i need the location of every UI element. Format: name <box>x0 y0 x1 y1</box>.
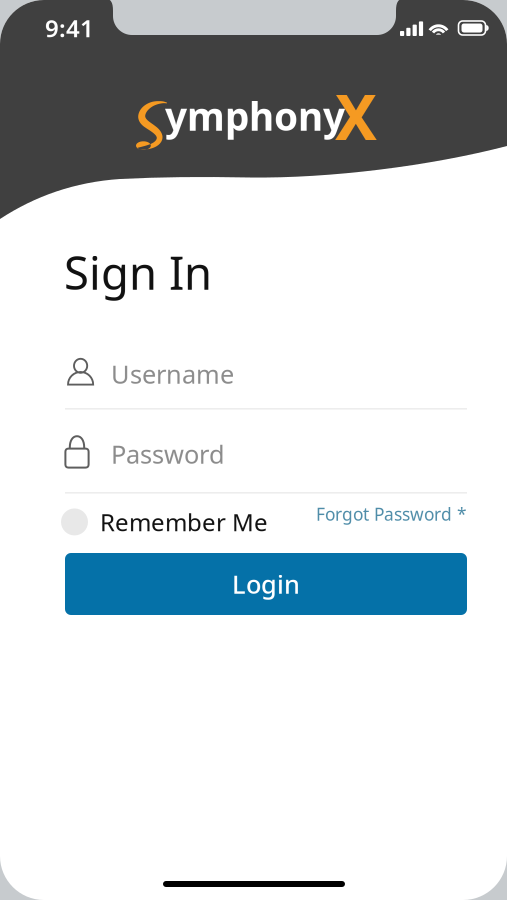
staticText: Remember Me <box>100 506 268 538</box>
staticText: X <box>335 74 377 157</box>
staticText: Sign In <box>64 242 212 302</box>
staticText: Username <box>111 357 234 391</box>
staticText: Password <box>111 437 225 471</box>
staticText: ymphony <box>165 90 345 141</box>
button[interactable]: Forgot Password * <box>287 503 467 525</box>
staticText: Forgot Password * <box>316 502 467 525</box>
staticText: 9:41 <box>45 12 94 44</box>
button[interactable]: Remember Me <box>61 506 268 538</box>
staticText: Login <box>232 567 300 601</box>
button[interactable]: Login <box>65 553 467 615</box>
